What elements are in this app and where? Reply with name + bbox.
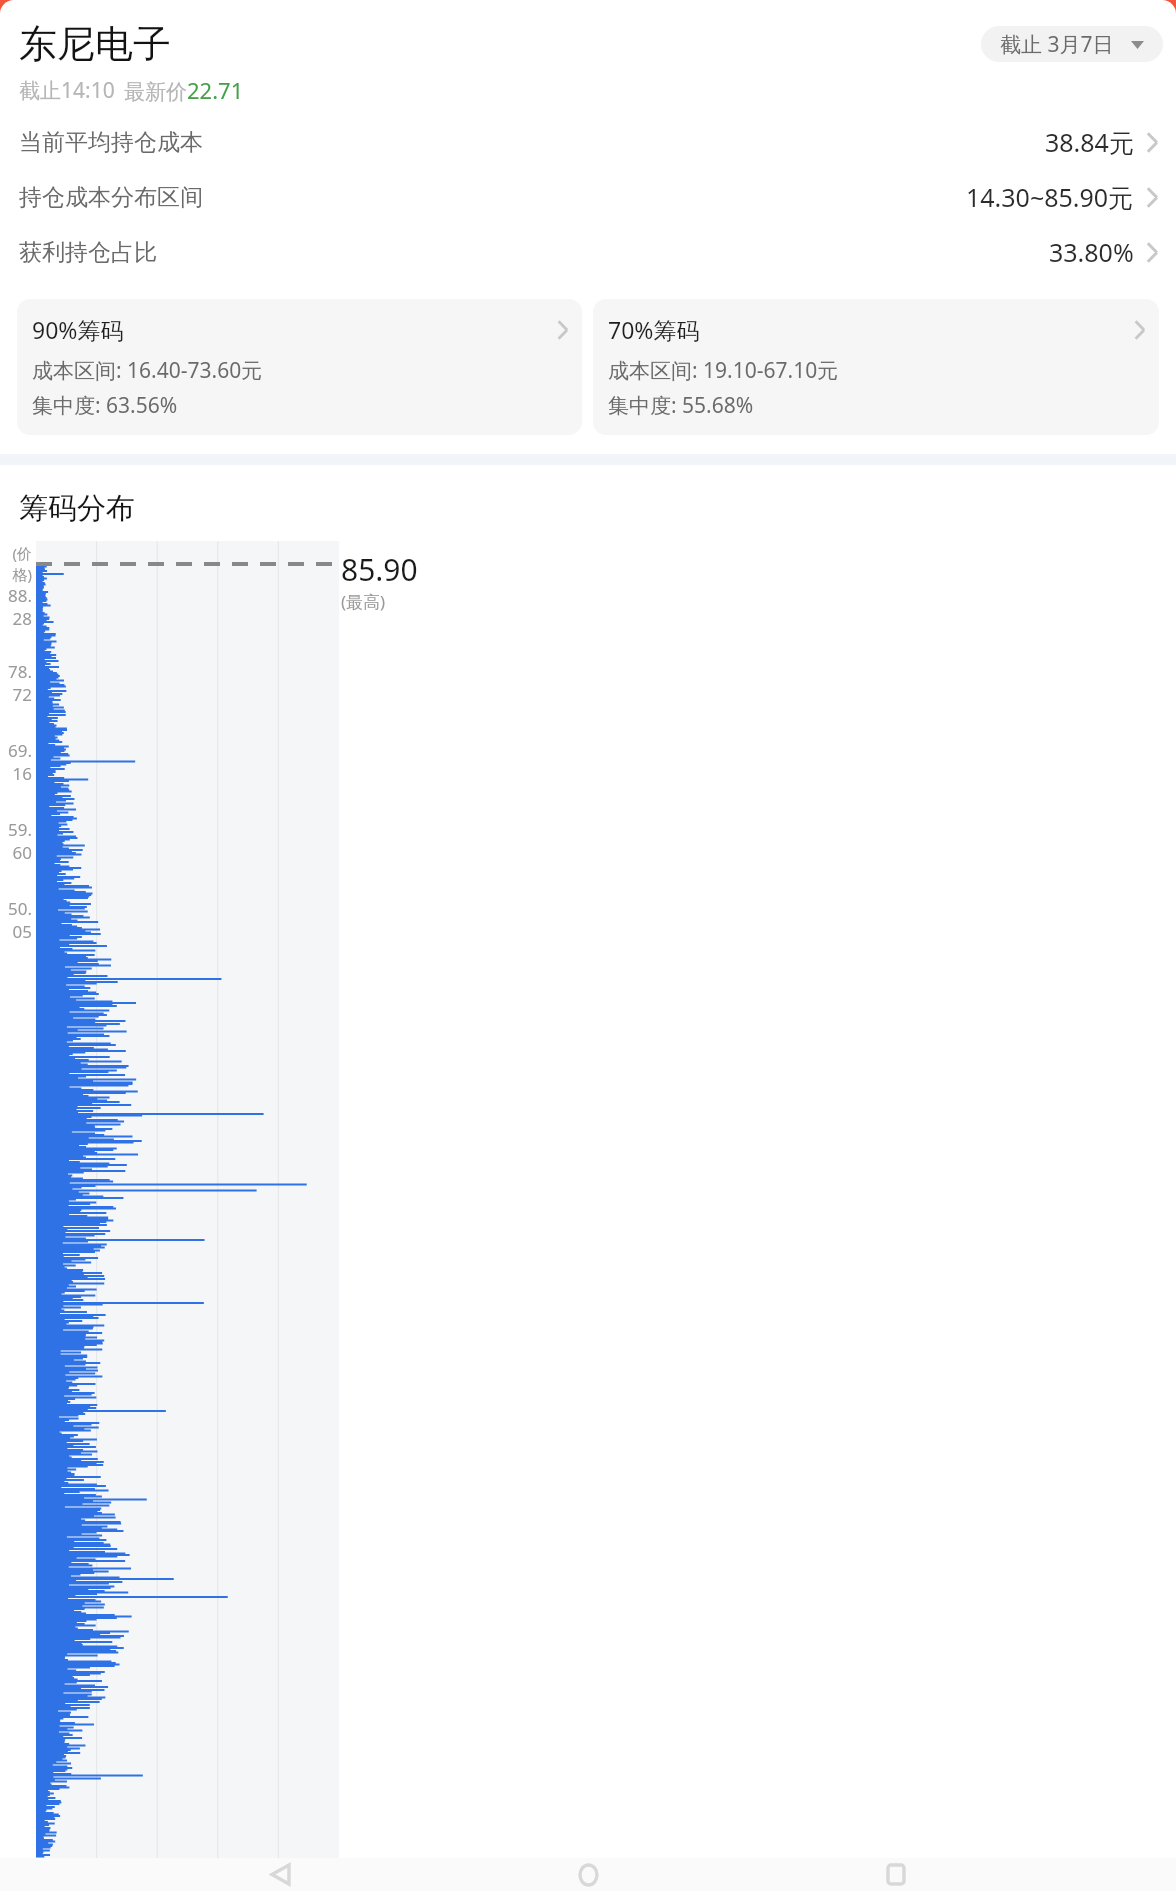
button[interactable]: Home: [560, 1858, 616, 1891]
staticText: 50.05: [0, 897, 32, 943]
button[interactable]: 当前平均持仓成本: [0, 117, 1176, 167]
button[interactable]: 截止 3月7日: [981, 26, 1163, 62]
staticText: 22.71: [187, 75, 244, 105]
staticText: 38.84元: [1045, 125, 1134, 159]
button[interactable]: Back: [252, 1858, 308, 1891]
staticText: 东尼电子: [19, 20, 171, 68]
staticText: 33.80%: [1049, 235, 1134, 269]
staticText: (最高): [341, 590, 386, 613]
button[interactable]: 90%筹码: [17, 299, 582, 435]
staticText: 85.90: [341, 549, 418, 590]
staticText: 59.60: [0, 818, 32, 864]
button[interactable]: 获利持仓占比: [0, 227, 1176, 277]
staticText: 当前平均持仓成本: [19, 128, 203, 157]
staticText: 截止 3月7日: [1000, 30, 1114, 59]
staticText: 成本区间: 19.10-67.10元: [608, 356, 839, 385]
button[interactable]: 持仓成本分布区间: [0, 172, 1176, 222]
staticText: 最新价: [124, 79, 187, 105]
staticText: 集中度: 63.56%: [32, 391, 178, 420]
staticText: 90%筹码: [32, 314, 124, 345]
staticText: 筹码分布: [19, 490, 135, 527]
staticText: 88.28: [0, 584, 32, 630]
button[interactable]: Recents: [868, 1858, 924, 1891]
staticText: 14.30~85.90元: [966, 180, 1134, 214]
staticText: 持仓成本分布区间: [19, 183, 203, 212]
staticText: 70%筹码: [608, 314, 700, 345]
staticText: 成本区间: 16.40-73.60元: [32, 356, 263, 385]
staticText: (价格): [0, 543, 32, 584]
staticText: 78.72: [0, 660, 32, 706]
button[interactable]: 70%筹码: [593, 299, 1159, 435]
staticText: 获利持仓占比: [19, 238, 157, 267]
staticText: 69.16: [0, 739, 32, 785]
staticText: 集中度: 55.68%: [608, 391, 754, 420]
staticText: 截止14:10: [19, 76, 115, 105]
